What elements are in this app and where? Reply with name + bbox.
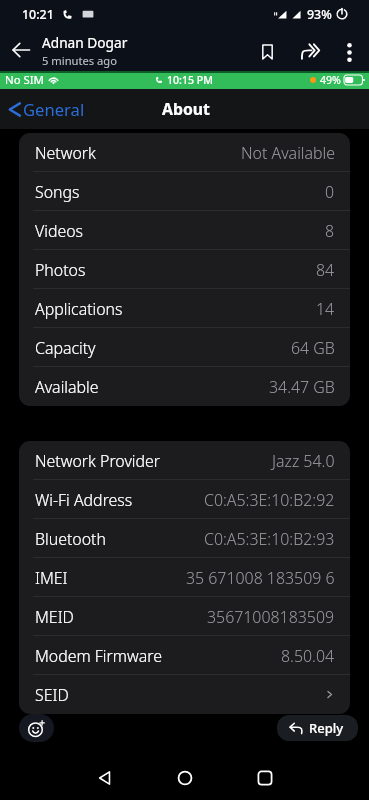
- button[interactable]: SEID: [19, 675, 350, 714]
- staticText: 84: [316, 259, 335, 281]
- staticText: C0:A5:3E:10:B2:92: [204, 489, 335, 511]
- button[interactable]: Network: [19, 133, 350, 172]
- staticText: No SIM: [5, 72, 44, 88]
- button[interactable]: Bookmark: [244, 28, 291, 71]
- button[interactable]: General: [0, 98, 93, 121]
- staticText: Bluetooth: [35, 528, 106, 550]
- button[interactable]: Bluetooth: [19, 519, 350, 558]
- button[interactable]: MEID: [19, 597, 350, 636]
- button[interactable]: Videos: [19, 211, 350, 250]
- staticText: 93%: [307, 6, 332, 23]
- button[interactable]: Wi-Fi Address: [19, 480, 350, 519]
- staticText: Capacity: [35, 337, 96, 359]
- staticText: 14: [316, 298, 335, 320]
- button[interactable]: Modem Firmware: [19, 636, 350, 675]
- staticText: Photos: [35, 259, 86, 281]
- staticText: About: [162, 98, 210, 120]
- staticText: Jazz 54.0: [272, 450, 335, 472]
- staticText: C0:A5:3E:10:B2:93: [204, 528, 335, 550]
- staticText: Available: [35, 376, 99, 398]
- button[interactable]: Capacity: [19, 328, 350, 367]
- staticText: Videos: [35, 220, 84, 242]
- button[interactable]: Add reaction: [19, 714, 54, 742]
- button[interactable]: More options: [330, 28, 369, 71]
- staticText: Network Provider: [35, 450, 161, 472]
- staticText: 10:21: [22, 6, 54, 23]
- staticText: Songs: [35, 181, 80, 203]
- staticText: Modem Firmware: [35, 645, 162, 667]
- staticText: 64 GB: [291, 337, 335, 359]
- staticText: 35 671008 183509 6: [186, 567, 335, 589]
- button[interactable]: Home: [165, 758, 205, 798]
- staticText: Wi-Fi Address: [35, 489, 133, 511]
- staticText: 5 minutes ago: [42, 53, 118, 68]
- staticText: Adnan Dogar: [42, 33, 128, 52]
- staticText: 0: [325, 181, 335, 203]
- staticText: 34.47 GB: [269, 376, 335, 398]
- staticText: Reply: [309, 719, 344, 737]
- staticText: 49%: [320, 73, 341, 87]
- button[interactable]: Back: [0, 28, 42, 71]
- staticText: 10:15 PM: [167, 73, 214, 87]
- staticText: 8.50.04: [281, 645, 335, 667]
- staticText: General: [23, 98, 85, 121]
- staticText: IMEI: [35, 567, 68, 589]
- staticText: 8: [325, 220, 335, 242]
- button[interactable]: Reply: [277, 715, 358, 741]
- button[interactable]: Network Provider: [19, 441, 350, 480]
- button[interactable]: Forward: [291, 28, 330, 71]
- button[interactable]: Recents: [245, 758, 285, 798]
- staticText: Network: [35, 142, 96, 164]
- button[interactable]: Applications: [19, 289, 350, 328]
- staticText: Applications: [35, 298, 123, 320]
- button[interactable]: Available: [19, 367, 350, 406]
- button[interactable]: Songs: [19, 172, 350, 211]
- button[interactable]: IMEI: [19, 558, 350, 597]
- button[interactable]: Photos: [19, 250, 350, 289]
- staticText: 35671008183509: [207, 606, 335, 628]
- button[interactable]: Back: [85, 758, 125, 798]
- staticText: MEID: [35, 606, 74, 628]
- staticText: SEID: [35, 684, 69, 706]
- staticText: Not Available: [241, 142, 335, 164]
